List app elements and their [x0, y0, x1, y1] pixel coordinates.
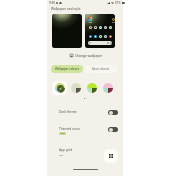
button[interactable]: Change wallpaper — [69, 52, 104, 59]
staticText: Wallpaper and style — [51, 7, 81, 11]
button[interactable]: App grid — [47, 144, 123, 166]
staticText: 5x5 — [59, 153, 64, 156]
button[interactable]: Colour option — [100, 81, 115, 95]
staticText: Change wallpaper — [75, 54, 103, 58]
staticText: Wallpaper colours — [55, 67, 80, 71]
staticText: New — [60, 132, 65, 135]
button[interactable]: Home screen preview — [85, 14, 115, 48]
staticText: App grid — [59, 148, 72, 152]
staticText: Dark theme — [59, 110, 77, 114]
button[interactable]: Lock screen preview — [52, 14, 82, 48]
staticText: 9:30 — [49, 1, 55, 4]
staticText: Basic colours — [92, 67, 110, 71]
button[interactable]: Colour option — [84, 81, 99, 95]
staticText: 87% — [115, 1, 121, 4]
button[interactable]: Themed icons — [47, 122, 123, 140]
button[interactable]: Colour option — [52, 81, 67, 95]
button[interactable]: Colour option — [68, 81, 83, 95]
button[interactable]: Dark theme — [47, 104, 123, 120]
button[interactable]: Change app grid — [104, 149, 118, 163]
button[interactable]: Basic colours — [85, 65, 117, 73]
button[interactable]: Toggle — [108, 110, 118, 115]
button[interactable]: Toggle — [108, 127, 118, 132]
staticText: Themed icons — [59, 127, 80, 131]
button[interactable]: Wallpaper colours — [51, 65, 83, 73]
